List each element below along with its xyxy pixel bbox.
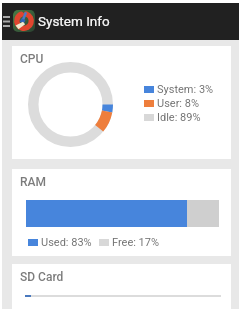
staticText: Free: 17%: [112, 236, 160, 249]
staticText: CPU: [20, 52, 44, 66]
staticText: Idle: 89%: [157, 111, 201, 124]
staticText: System: 3%: [157, 83, 214, 96]
button[interactable]: RAM: [12, 169, 231, 256]
button[interactable]: SD Card: [12, 264, 231, 309]
button[interactable]: CPU: [12, 46, 231, 159]
staticText: Used: 83%: [41, 236, 92, 249]
staticText: SD Card: [20, 270, 64, 284]
staticText: RAM: [20, 175, 47, 189]
staticText: User: 8%: [157, 97, 200, 110]
button[interactable]: Open navigation menu: [0, 10, 12, 33]
staticText: System Info: [38, 13, 110, 29]
